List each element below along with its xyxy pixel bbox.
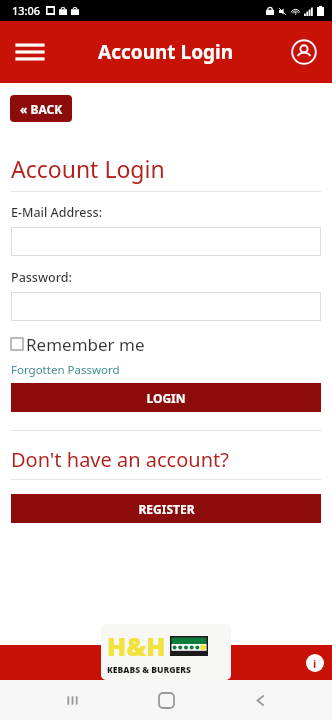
- button[interactable]: Forgotten Password: [11, 362, 120, 378]
- button[interactable]: Home: [144, 680, 188, 720]
- button[interactable]: Ad information: [306, 654, 324, 672]
- button[interactable]: [11, 227, 321, 256]
- staticText: LOGIN: [146, 390, 186, 406]
- button[interactable]: « BACK: [10, 95, 72, 122]
- staticText: Account Login: [98, 39, 234, 65]
- staticText: i: [313, 656, 317, 671]
- button[interactable]: Recent apps: [50, 680, 94, 720]
- staticText: Password:: [11, 269, 72, 286]
- staticText: KEBABS & BURGERS: [107, 664, 191, 675]
- staticText: E-Mail Address:: [11, 204, 103, 221]
- button[interactable]: Account: [284, 32, 324, 72]
- staticText: Remember me: [26, 333, 145, 356]
- button[interactable]: REGISTER: [11, 494, 321, 523]
- button[interactable]: LOGIN: [11, 383, 321, 412]
- button[interactable]: Remember me: [11, 332, 332, 356]
- button[interactable]: H&H: [101, 624, 231, 680]
- button[interactable]: Open navigation menu: [10, 32, 50, 72]
- staticText: « BACK: [20, 101, 63, 117]
- staticText: H&H: [107, 629, 166, 663]
- staticText: Forgotten Password: [11, 362, 120, 378]
- staticText: REGISTER: [138, 501, 195, 517]
- button[interactable]: Back: [238, 680, 282, 720]
- staticText: Don't have an account?: [11, 446, 229, 473]
- staticText: Account Login: [11, 153, 165, 184]
- button[interactable]: [11, 292, 321, 321]
- staticText: 13:06: [12, 3, 41, 18]
